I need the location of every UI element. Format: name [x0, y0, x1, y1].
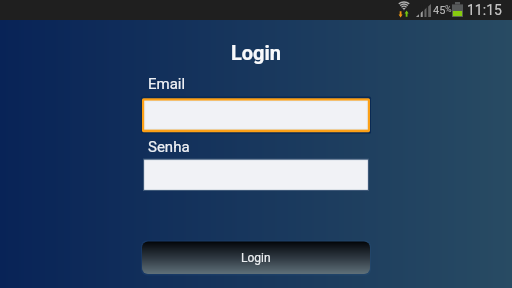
staticText: Login [231, 41, 282, 64]
staticText: 45 [433, 4, 446, 17]
staticText: 11:15 [467, 2, 502, 18]
staticText: % [445, 4, 452, 15]
button[interactable]: Senha input field [143, 158, 369, 192]
staticText: Login [241, 251, 271, 265]
button[interactable]: Email input field [141, 96, 371, 135]
other: Mobile signal [416, 4, 431, 17]
other: Wi-Fi connected [397, 0, 413, 18]
other: Battery 45 percent [452, 2, 463, 17]
staticText: Email [148, 75, 186, 93]
staticText: Senha [148, 138, 190, 156]
button[interactable]: Login [141, 240, 371, 276]
